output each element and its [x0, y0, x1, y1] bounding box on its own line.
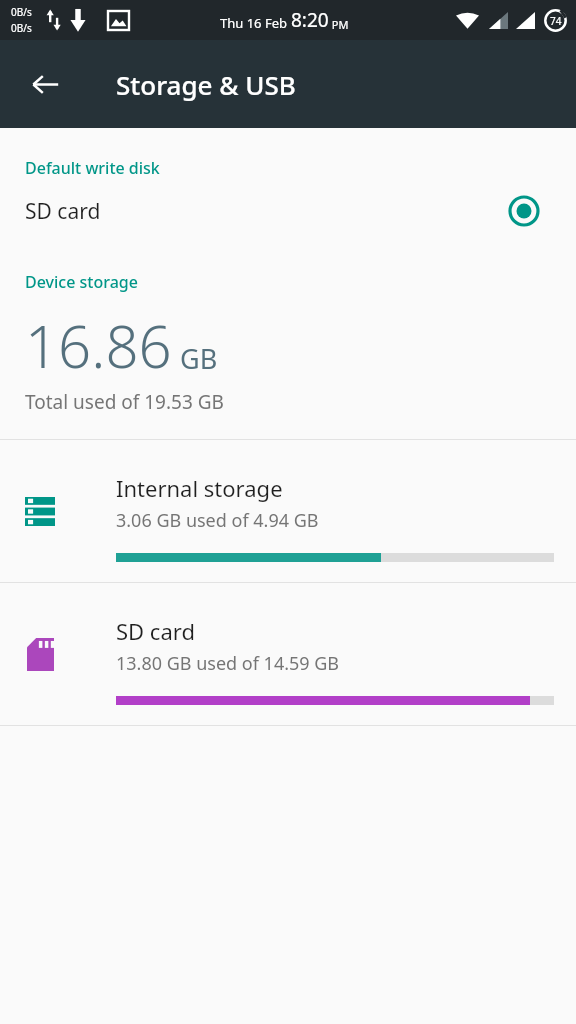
- staticText: Internal storage: [116, 473, 283, 503]
- staticText: GB: [180, 340, 218, 377]
- other: Internal storage: [0, 440, 116, 582]
- other: SD card: [0, 583, 116, 725]
- staticText: Device storage: [25, 271, 138, 293]
- staticText: 8:20: [291, 7, 329, 33]
- staticText: 3.06 GB used of 4.94 GB: [116, 508, 319, 533]
- staticText: Default write disk: [25, 157, 160, 179]
- button[interactable]: SD card: [0, 179, 576, 243]
- staticText: Thu 16 Feb: [220, 14, 291, 32]
- staticText: SD card: [116, 616, 195, 646]
- button[interactable]: SD card: [0, 583, 576, 725]
- staticText: SD card: [25, 197, 101, 226]
- button[interactable]: Internal storage: [0, 440, 576, 582]
- staticText: 13.80 GB used of 14.59 GB: [116, 651, 340, 676]
- staticText: 74: [550, 14, 562, 28]
- staticText: 0B/s: [11, 5, 32, 19]
- staticText: PM: [329, 17, 349, 32]
- button[interactable]: Back: [17, 56, 73, 112]
- other: SD card selected: [507, 194, 541, 228]
- staticText: Storage & USB: [116, 67, 296, 102]
- staticText: 0B/s: [11, 21, 32, 35]
- staticText: Total used of 19.53 GB: [25, 389, 224, 415]
- staticText: 16.86: [25, 306, 172, 385]
